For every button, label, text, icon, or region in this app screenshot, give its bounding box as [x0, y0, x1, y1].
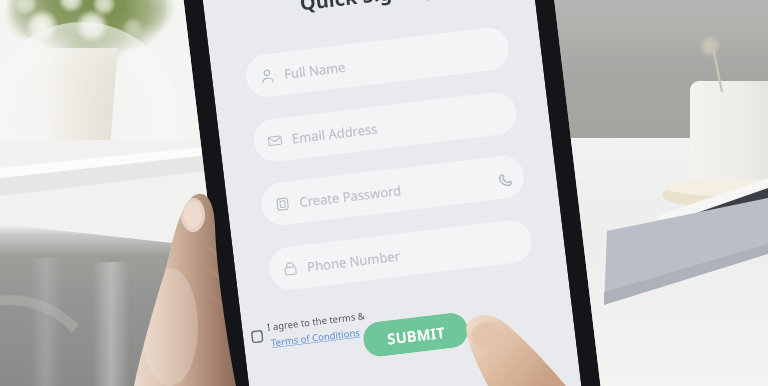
- staticText: Terms of Conditions: [270, 326, 361, 349]
- staticText: Phone Number: [306, 246, 402, 276]
- staticText: Full Name: [283, 58, 347, 83]
- button[interactable]: Phone Number: [267, 218, 534, 292]
- button[interactable]: Call: [497, 173, 513, 189]
- other: Agree to the terms: [252, 331, 263, 343]
- staticText: Create Password: [298, 181, 403, 211]
- button[interactable]: SUBMIT: [361, 311, 470, 358]
- button[interactable]: Email Address: [251, 90, 519, 164]
- button[interactable]: Create Password: [259, 153, 526, 227]
- staticText: Email Address: [291, 119, 378, 147]
- staticText: SUBMIT: [386, 322, 446, 349]
- staticText: Quick Sign Up: [298, 0, 439, 17]
- button[interactable]: Full Name: [244, 25, 511, 99]
- staticText: I agree to the terms &: [266, 309, 366, 334]
- button[interactable]: Agree to the terms: [250, 306, 377, 353]
